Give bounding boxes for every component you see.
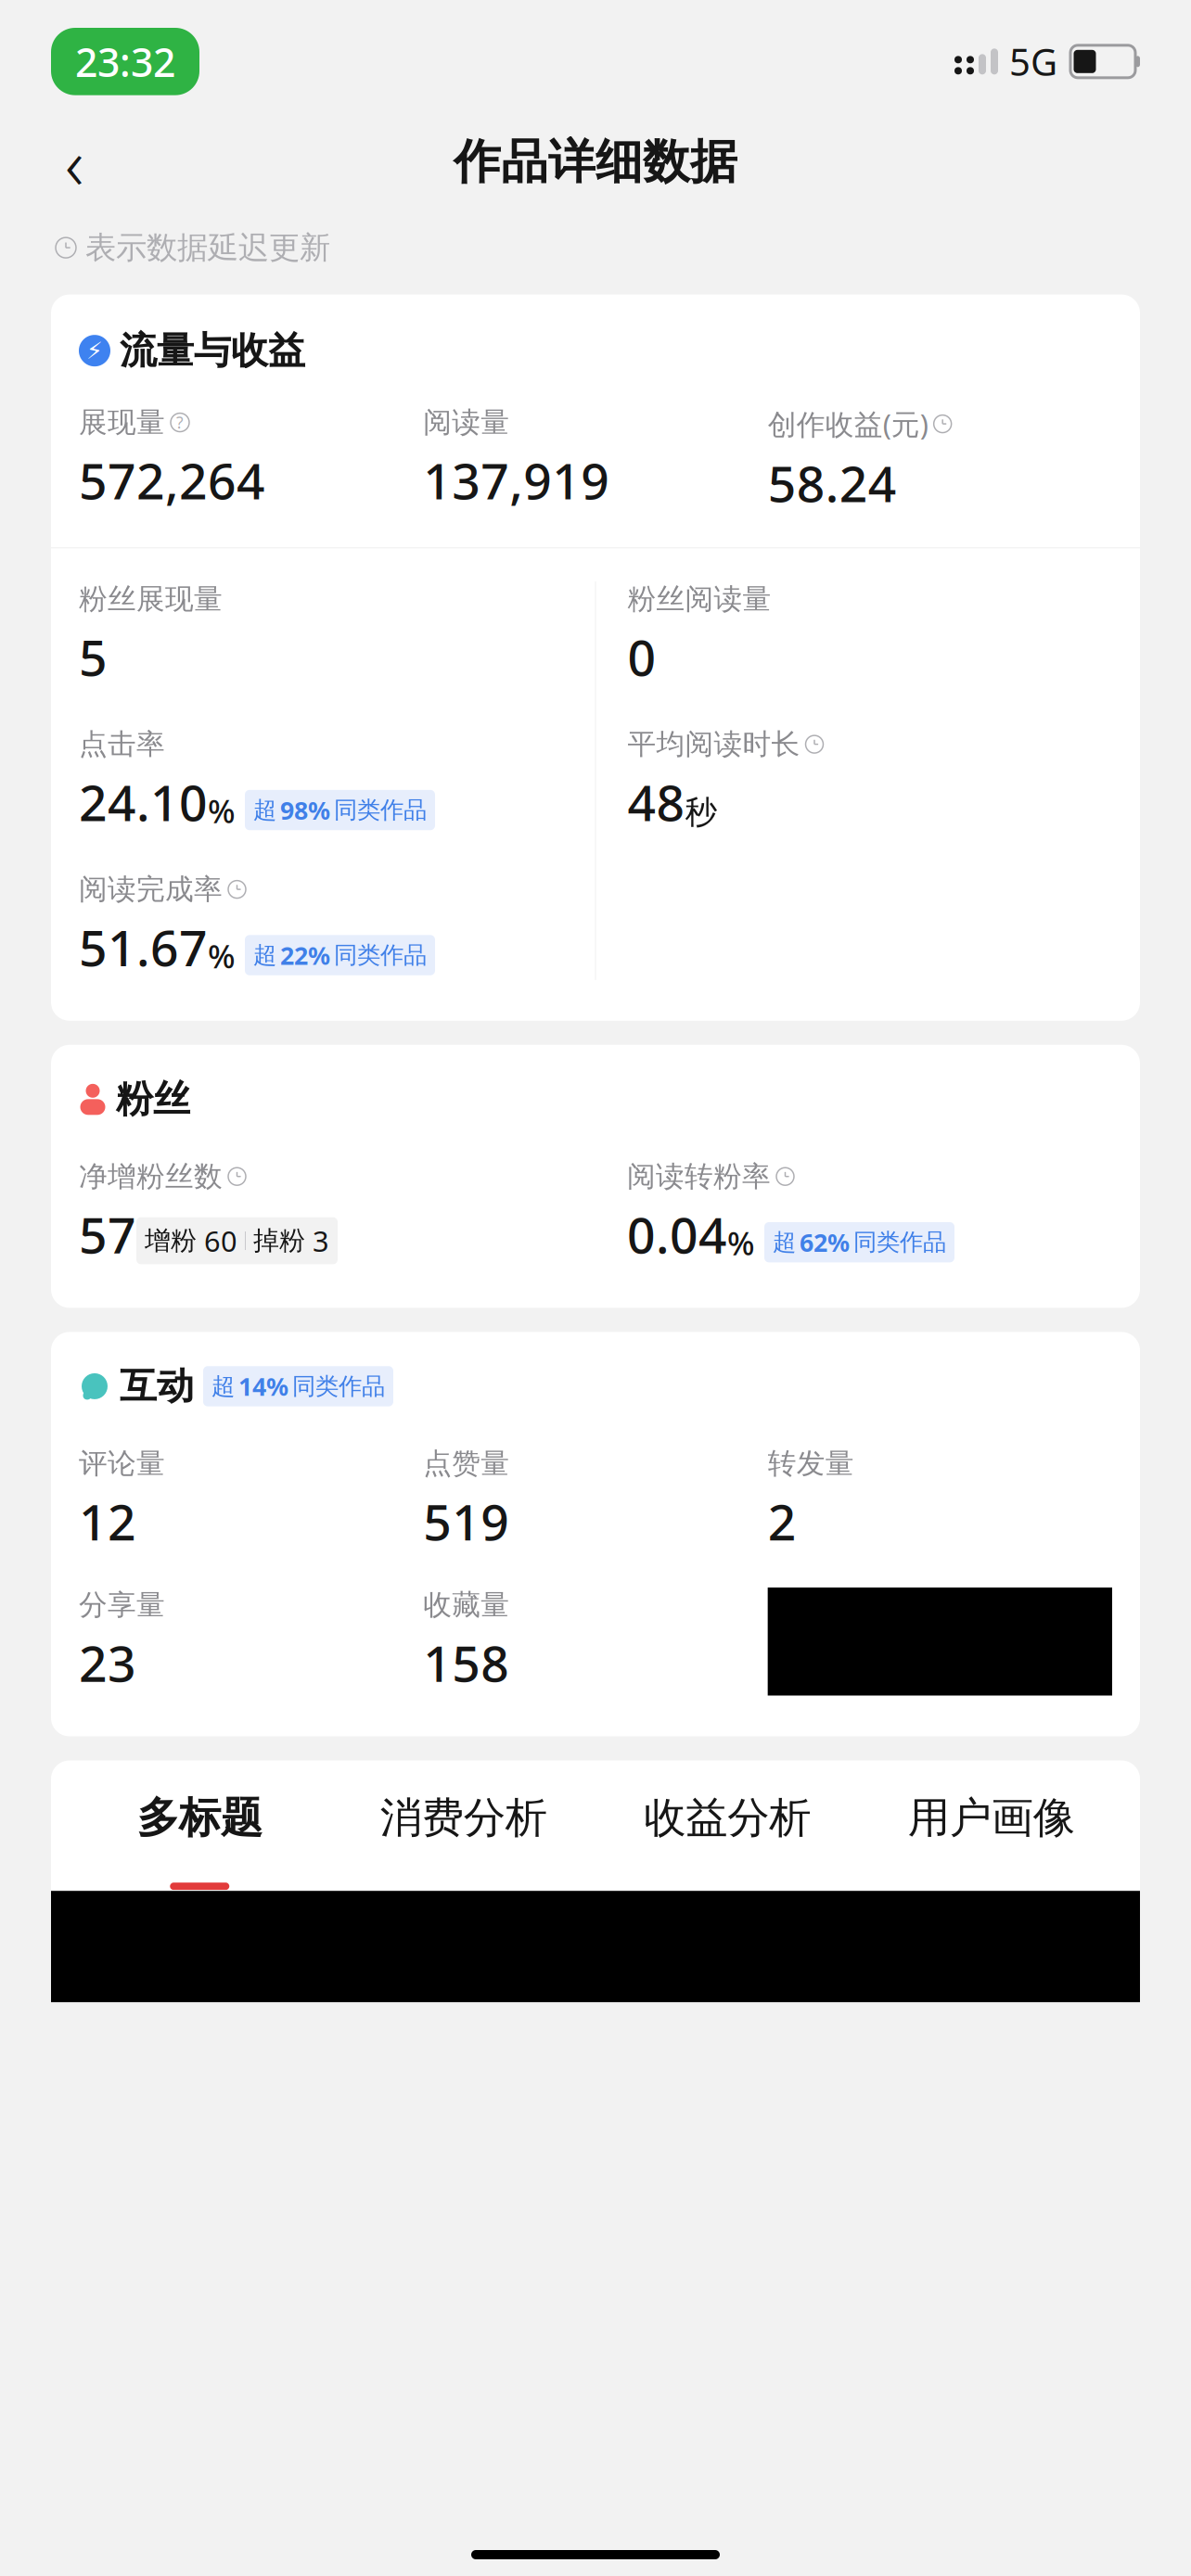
staticText: 收益分析	[644, 1792, 811, 1844]
staticText: 23:32	[75, 35, 175, 88]
staticText: 0	[628, 624, 656, 690]
staticText: ‹	[65, 114, 83, 210]
staticText: 5G	[1009, 37, 1057, 86]
staticText: 51.67	[79, 914, 208, 980]
button[interactable]: 收益分析	[595, 1792, 859, 1890]
button[interactable]: 返回	[37, 125, 111, 199]
staticText: 收藏量	[423, 1588, 510, 1622]
staticText: %	[727, 1222, 755, 1264]
staticText: 0.04	[627, 1201, 727, 1267]
button[interactable]: 多标题	[68, 1792, 332, 1890]
staticText: 24.10	[79, 769, 208, 835]
staticText: 作品详细数据	[454, 133, 737, 191]
staticText: 分享量	[79, 1588, 165, 1622]
staticText: 多标题	[137, 1792, 262, 1844]
staticText: 流量与收益	[120, 328, 305, 373]
staticText: 137,919	[423, 447, 610, 513]
staticText: 超	[211, 1372, 235, 1401]
staticText: 12	[79, 1488, 136, 1554]
staticText: 净增粉丝数	[79, 1159, 223, 1194]
staticText: 超	[253, 796, 276, 824]
staticText: 秒	[685, 793, 717, 832]
staticText: 23	[79, 1630, 136, 1696]
staticText: 阅读转粉率	[627, 1159, 771, 1194]
button[interactable]: 用户画像	[859, 1792, 1123, 1890]
staticText: 同类作品	[334, 796, 427, 824]
staticText: 同类作品	[853, 1228, 946, 1257]
staticText: 点赞量	[423, 1446, 510, 1481]
staticText: 超	[773, 1228, 796, 1257]
staticText: 同类作品	[292, 1372, 385, 1401]
staticText: 519	[423, 1488, 510, 1554]
staticText: 用户画像	[908, 1792, 1075, 1844]
staticText: 5	[79, 624, 108, 690]
staticText: 粉丝阅读量	[628, 582, 771, 617]
staticText: 粉丝	[116, 1076, 190, 1122]
staticText: 转发量	[768, 1446, 854, 1481]
staticText: 48	[628, 769, 685, 835]
staticText: 60	[204, 1222, 237, 1260]
staticText: 22%	[280, 939, 330, 972]
staticText: 掉粉	[253, 1225, 305, 1257]
staticText: 平均阅读时长	[628, 727, 800, 762]
staticText: ⚡︎	[86, 337, 103, 364]
staticText: %	[208, 789, 236, 832]
staticText: 2	[768, 1488, 797, 1554]
staticText: 57	[79, 1201, 136, 1267]
staticText: 14%	[238, 1370, 288, 1403]
staticText: 展现量	[79, 405, 165, 440]
staticText: 3	[313, 1222, 329, 1260]
staticText: 超	[253, 941, 276, 970]
staticText: 阅读量	[423, 405, 510, 440]
staticText: 572,264	[79, 447, 265, 513]
staticText: 表示数据延迟更新	[85, 229, 330, 267]
staticText: 创作收益(元)	[768, 405, 928, 443]
staticText: %	[208, 934, 236, 977]
staticText: 阅读完成率	[79, 872, 223, 907]
staticText: 互动	[120, 1363, 194, 1409]
staticText: 98%	[280, 794, 330, 826]
staticText: ?	[176, 412, 184, 433]
button[interactable]: 消费分析	[332, 1792, 595, 1890]
staticText: 62%	[800, 1226, 850, 1259]
staticText: 158	[423, 1630, 510, 1696]
staticText: 评论量	[79, 1446, 165, 1481]
staticText: 增粉	[145, 1225, 197, 1257]
staticText: 粉丝展现量	[79, 582, 223, 617]
staticText: 同类作品	[334, 941, 427, 970]
staticText: 58.24	[768, 450, 897, 516]
staticText: 点击率	[79, 727, 165, 762]
staticText: 消费分析	[380, 1792, 547, 1844]
